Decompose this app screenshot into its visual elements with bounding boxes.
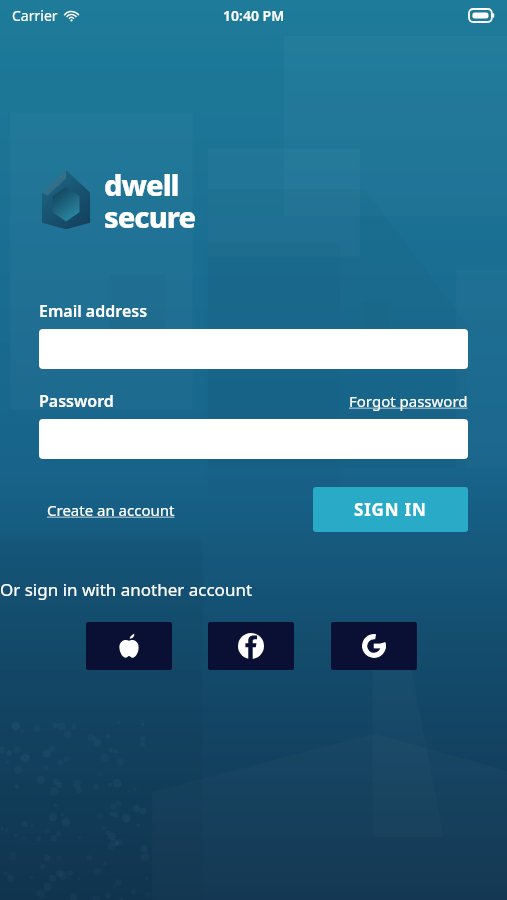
staticText: Create an account [47,500,175,520]
staticText: dwell [104,165,179,204]
button[interactable]: Forgot password [349,391,468,411]
staticText: Password [39,390,114,412]
button[interactable]: Create an account [47,500,175,520]
button[interactable]: Sign in with Google [331,622,417,670]
button[interactable]: SIGN IN [313,487,468,532]
staticText: secure [104,197,196,230]
button[interactable] [39,419,468,459]
button[interactable] [39,329,468,369]
staticText: 10:40 PM [223,6,285,25]
staticText: SIGN IN [354,498,427,521]
staticText: Forgot password [349,391,468,411]
button[interactable]: Sign in with Facebook [208,622,294,670]
staticText: Email address [39,300,148,322]
button[interactable]: Sign in with Apple [86,622,172,670]
staticText: Carrier [12,6,58,25]
staticText: Or sign in with another account [0,578,507,601]
